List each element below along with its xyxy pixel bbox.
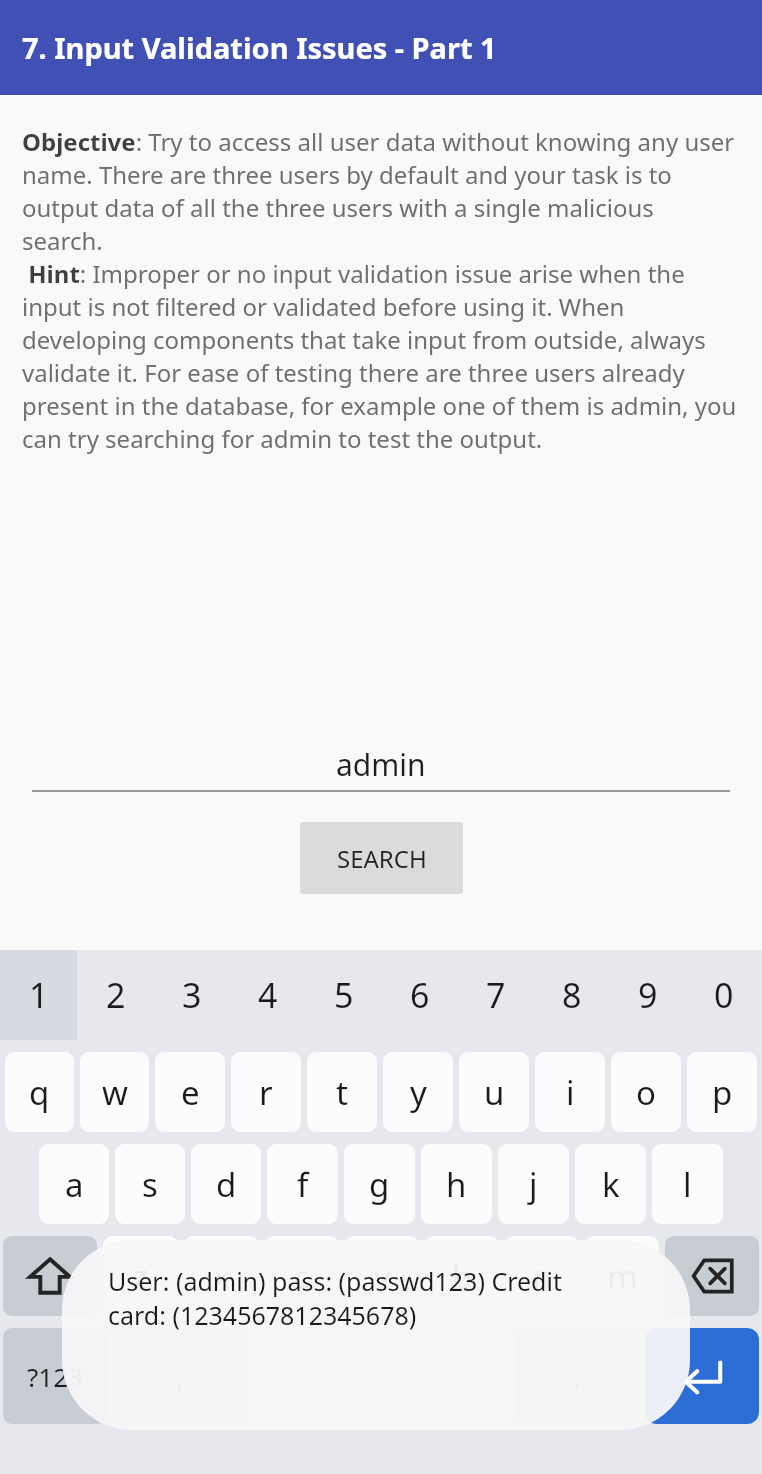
button[interactable]: l xyxy=(652,1144,723,1224)
staticText: v xyxy=(374,1254,391,1299)
button[interactable]: 2 xyxy=(77,950,154,1040)
staticText: y xyxy=(410,1070,427,1115)
staticText: g xyxy=(369,1162,390,1207)
staticText: w xyxy=(102,1070,128,1115)
button[interactable]: g xyxy=(344,1144,415,1224)
staticText: 7 xyxy=(486,972,506,1018)
staticText: p xyxy=(712,1070,733,1115)
staticText: k xyxy=(602,1162,620,1207)
button[interactable]: n xyxy=(505,1236,579,1316)
button[interactable]: t xyxy=(307,1052,377,1132)
staticText: z xyxy=(133,1254,149,1299)
button[interactable]: z xyxy=(103,1236,178,1316)
button[interactable]: o xyxy=(611,1052,681,1132)
staticText: o xyxy=(636,1070,656,1115)
staticText: m xyxy=(607,1254,638,1299)
button[interactable]: w xyxy=(80,1052,149,1132)
staticText: Objective: Try to access all user data w… xyxy=(22,125,740,455)
button[interactable]: ?123 xyxy=(3,1328,107,1424)
staticText: t xyxy=(336,1070,348,1115)
staticText: admin xyxy=(336,744,426,785)
button[interactable]: s xyxy=(115,1144,185,1224)
button[interactable]: admin xyxy=(32,738,730,790)
staticText: q xyxy=(29,1070,50,1115)
staticText: e xyxy=(181,1070,200,1115)
staticText: 4 xyxy=(258,972,278,1018)
button[interactable]: i xyxy=(535,1052,605,1132)
staticText: f xyxy=(297,1162,309,1207)
button[interactable]: 9 xyxy=(610,950,686,1040)
button[interactable]: a xyxy=(39,1144,109,1224)
staticText: 8 xyxy=(562,972,582,1018)
staticText: x xyxy=(213,1254,231,1299)
button[interactable]: d xyxy=(191,1144,261,1224)
staticText: h xyxy=(446,1162,467,1207)
button[interactable]: 6 xyxy=(382,950,458,1040)
staticText: 5 xyxy=(334,972,354,1018)
staticText: j xyxy=(529,1162,538,1207)
button[interactable]: 0 xyxy=(686,950,762,1040)
staticText: b xyxy=(452,1254,473,1299)
button[interactable]: Shift xyxy=(3,1236,97,1316)
button[interactable]: p xyxy=(687,1052,757,1132)
staticText: SEARCH xyxy=(337,842,427,875)
button[interactable]: SEARCH xyxy=(300,822,463,894)
button[interactable]: h xyxy=(421,1144,492,1224)
button[interactable]: 1 xyxy=(0,950,77,1040)
button[interactable]: v xyxy=(345,1236,419,1316)
staticText: User: (admin) pass: (passwd123) Credit c… xyxy=(108,1264,562,1332)
button[interactable]: c xyxy=(265,1236,339,1316)
staticText: 3 xyxy=(182,972,202,1018)
button[interactable]: u xyxy=(459,1052,529,1132)
button[interactable]: y xyxy=(383,1052,453,1132)
button[interactable]: b xyxy=(425,1236,499,1316)
button[interactable]: k xyxy=(575,1144,646,1224)
button[interactable]: r xyxy=(231,1052,301,1132)
button[interactable]: x xyxy=(184,1236,259,1316)
button[interactable]: 3 xyxy=(154,950,230,1040)
button[interactable]: f xyxy=(267,1144,338,1224)
staticText: 6 xyxy=(410,972,430,1018)
staticText: 0 xyxy=(714,972,734,1018)
staticText: d xyxy=(216,1162,237,1207)
staticText: a xyxy=(65,1162,84,1207)
staticText: i xyxy=(566,1070,575,1115)
staticText: r xyxy=(259,1070,273,1115)
button[interactable]: q xyxy=(5,1052,74,1132)
button[interactable]: Backspace xyxy=(665,1236,759,1316)
staticText: n xyxy=(532,1254,553,1299)
button[interactable]: j xyxy=(498,1144,569,1224)
button[interactable]: 5 xyxy=(306,950,382,1040)
staticText: c xyxy=(294,1254,310,1299)
staticText: 1 xyxy=(29,972,49,1018)
staticText: u xyxy=(484,1070,505,1115)
button[interactable]: 7 xyxy=(458,950,534,1040)
button[interactable]: e xyxy=(155,1052,225,1132)
button[interactable]: Enter xyxy=(645,1328,759,1424)
staticText: 2 xyxy=(106,972,126,1018)
staticText: ?123 xyxy=(27,1359,83,1394)
staticText: 7. Input Validation Issues - Part 1 xyxy=(22,28,497,67)
button[interactable]: 8 xyxy=(534,950,610,1040)
staticText: s xyxy=(142,1162,158,1207)
staticText: 9 xyxy=(638,972,658,1018)
staticText: l xyxy=(683,1162,692,1207)
button[interactable]: 4 xyxy=(230,950,306,1040)
